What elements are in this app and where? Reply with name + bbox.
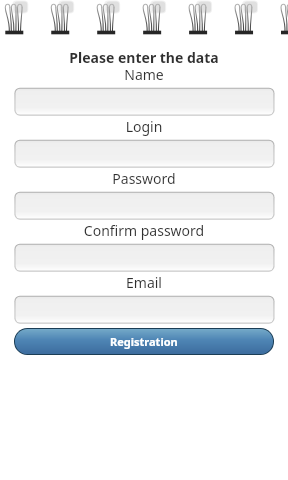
- button[interactable]: Registration: [15, 329, 273, 354]
- staticText: Registration: [110, 334, 178, 349]
- staticText: Please enter the data: [0, 48, 288, 67]
- staticText: Email: [0, 273, 288, 292]
- staticText: Confirm password: [0, 221, 288, 240]
- staticText: Name: [0, 65, 288, 84]
- staticText: Login: [0, 117, 288, 136]
- staticText: Password: [0, 169, 288, 188]
